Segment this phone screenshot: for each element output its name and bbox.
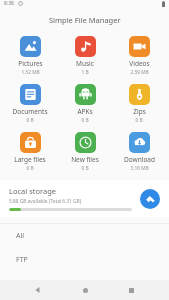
button[interactable]: Back (29, 281, 47, 299)
staticText: Zips (133, 107, 146, 116)
staticText: New files (71, 155, 99, 164)
staticText: 2.59 MB (130, 69, 149, 76)
button[interactable]: Home (76, 281, 94, 299)
staticText: Local storage (9, 186, 56, 196)
staticText: Simple File Manager (49, 15, 121, 25)
staticText: All (16, 231, 25, 241)
button[interactable]: Free space (140, 189, 160, 209)
button[interactable]: Zips (114, 82, 164, 126)
staticText: 0 B (26, 165, 34, 172)
button[interactable]: New files (60, 130, 110, 174)
button[interactable]: All (0, 224, 169, 248)
button[interactable]: Download (114, 130, 164, 174)
button[interactable]: APKs (60, 82, 110, 126)
staticText: 3.16 MB (130, 165, 149, 172)
staticText: APKs (77, 107, 93, 116)
staticText: FTP (16, 255, 28, 265)
staticText: 1 B (81, 69, 89, 76)
staticText: 8:38 (4, 0, 14, 7)
staticText: Pictures (18, 59, 43, 68)
button[interactable]: Documents (5, 82, 55, 126)
staticText: 0 B (81, 165, 89, 172)
staticText: Music (76, 59, 94, 68)
button[interactable]: Recents (122, 281, 140, 299)
staticText: Videos (129, 59, 150, 68)
button[interactable]: Large files (5, 130, 55, 174)
button[interactable]: Music (60, 34, 110, 78)
staticText: 0 B (26, 117, 34, 124)
staticText: 5.88 GB available (Total 6.31 GB) (9, 198, 82, 205)
staticText: 1.52 MB (21, 69, 40, 76)
button[interactable]: Local storage (0, 180, 169, 217)
staticText: Documents (12, 107, 48, 116)
button[interactable]: Videos (114, 34, 164, 78)
staticText: Large files (14, 155, 46, 164)
staticText: 0 B (135, 117, 143, 124)
button[interactable]: FTP (0, 248, 169, 272)
staticText: 0 B (81, 117, 89, 124)
button[interactable]: Pictures (5, 34, 55, 78)
staticText: Download (124, 155, 155, 164)
